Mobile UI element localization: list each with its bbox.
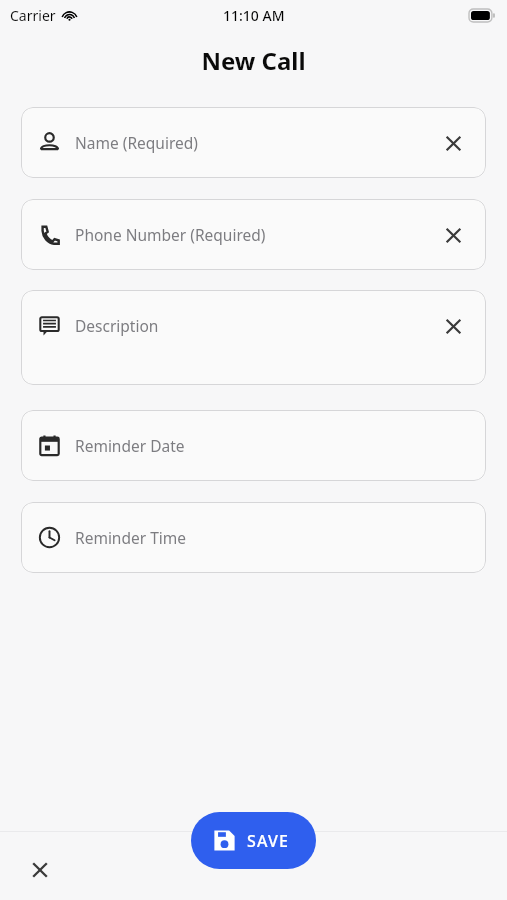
staticText: 11:10 AM xyxy=(223,6,285,25)
staticText: Reminder Time xyxy=(75,527,187,548)
button[interactable]: Description xyxy=(21,290,486,385)
button[interactable]: Reminder Date xyxy=(21,410,486,481)
button[interactable]: Clear Description xyxy=(436,309,470,343)
staticText: Name (Required) xyxy=(75,132,198,153)
button[interactable]: SAVE xyxy=(191,812,316,869)
button[interactable]: Clear Phone Number (Required) xyxy=(436,218,470,252)
button[interactable]: Close xyxy=(18,848,62,892)
button[interactable]: Phone Number (Required) xyxy=(21,199,486,270)
staticText: SAVE xyxy=(247,830,290,852)
button[interactable]: Clear Name (Required) xyxy=(436,126,470,160)
button[interactable]: Name (Required) xyxy=(21,107,486,178)
staticText: Reminder Date xyxy=(75,435,185,456)
staticText: Description xyxy=(75,315,159,336)
staticText: Phone Number (Required) xyxy=(75,224,266,245)
button[interactable]: Reminder Time xyxy=(21,502,486,573)
staticText: Carrier xyxy=(10,6,56,25)
staticText: New Call xyxy=(0,44,507,77)
